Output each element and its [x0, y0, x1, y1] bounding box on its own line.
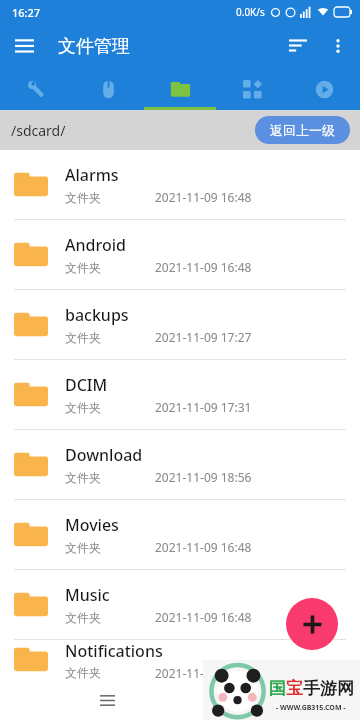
button[interactable]: backups [0, 290, 360, 359]
staticText: 文件夹 [65, 540, 101, 555]
button[interactable]: Media [288, 68, 360, 110]
button[interactable]: Notifications [0, 640, 360, 680]
button[interactable]: DCIM [0, 360, 360, 429]
staticText: Android [65, 234, 126, 256]
staticText: 2021-11-09 16:48 [155, 539, 252, 555]
staticText: /sdcard/ [11, 121, 66, 140]
staticText: 2021-11-09 16:48 [155, 609, 252, 625]
button[interactable]: Movies [0, 500, 360, 569]
button[interactable]: Mouse [72, 68, 144, 110]
button[interactable]: Home [236, 683, 270, 717]
staticText: 文件夹 [65, 610, 101, 625]
staticText: - WWW.GB315.COM - [276, 703, 346, 713]
button[interactable]: Music [0, 570, 360, 639]
button[interactable]: Tools [0, 68, 72, 110]
staticText: 文件管理 [58, 35, 130, 58]
staticText: 文件夹 [65, 665, 101, 680]
staticText: 16:27 [12, 5, 41, 20]
button[interactable]: Alarms [0, 150, 360, 219]
staticText: DCIM [65, 374, 108, 396]
staticText: Alarms [65, 164, 119, 186]
staticText: 文件夹 [65, 190, 101, 205]
staticText: 2021-11-09 16:48 [155, 259, 252, 275]
staticText: 文件夹 [65, 330, 101, 345]
staticText: 2021-11-09 16:48 [155, 665, 252, 680]
button[interactable]: Sort [278, 26, 318, 66]
button[interactable]: Files [144, 68, 216, 110]
staticText: 文件夹 [65, 470, 101, 485]
staticText: Movies [65, 514, 119, 536]
staticText: 宝 [286, 678, 303, 699]
staticText: 2021-11-09 16:48 [155, 189, 252, 205]
button[interactable]: Recents [90, 683, 124, 717]
staticText: backups [65, 304, 129, 326]
staticText: 2021-11-09 17:31 [155, 399, 252, 415]
staticText: 2021-11-09 17:27 [155, 329, 252, 345]
staticText: 文件夹 [65, 400, 101, 415]
staticText: 国 [269, 678, 286, 699]
staticText: 0.0K/s [236, 5, 265, 19]
button[interactable]: Add [286, 598, 338, 650]
staticText: 返回上一级 [270, 122, 335, 138]
button[interactable]: 返回上一级 [255, 116, 350, 144]
button[interactable]: Android [0, 220, 360, 289]
staticText: Music [65, 584, 110, 606]
button[interactable]: Apps [216, 68, 288, 110]
staticText: 手游网 [303, 678, 354, 699]
button[interactable]: More options [318, 26, 358, 66]
staticText: 2021-11-09 18:56 [155, 469, 252, 485]
button[interactable]: Menu [6, 28, 42, 64]
staticText: Notifications [65, 640, 163, 662]
staticText: Download [65, 444, 143, 466]
button[interactable]: Download [0, 430, 360, 499]
staticText: 文件夹 [65, 260, 101, 275]
